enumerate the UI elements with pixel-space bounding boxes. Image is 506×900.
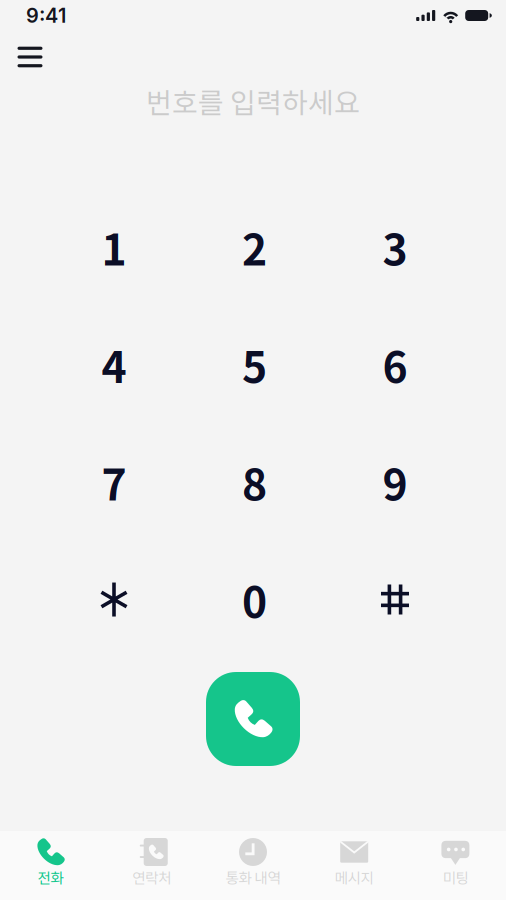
button[interactable]: 0 <box>184 554 325 644</box>
staticText: 7 <box>101 451 126 513</box>
button[interactable]: 6 <box>325 319 465 409</box>
staticText: 0 <box>242 569 267 630</box>
staticText: 3 <box>382 216 407 278</box>
button[interactable]: 1 <box>44 202 184 292</box>
button[interactable]: 2 <box>184 202 325 292</box>
staticText: 메시지 <box>335 866 374 888</box>
button[interactable]: Star <box>44 554 184 644</box>
staticText: 2 <box>242 216 267 278</box>
button[interactable]: 연락처 <box>101 824 202 900</box>
button[interactable]: Menu <box>5 39 55 75</box>
staticText: 미팅 <box>442 866 468 888</box>
staticText: 6 <box>382 334 407 395</box>
staticText: 8 <box>242 451 267 513</box>
button[interactable]: 5 <box>184 319 325 409</box>
staticText: 연락처 <box>132 866 171 888</box>
staticText: 9 <box>382 451 407 513</box>
button[interactable]: 8 <box>184 437 325 527</box>
staticText: 1 <box>101 216 126 278</box>
button[interactable]: 전화 <box>0 824 101 900</box>
button[interactable]: Pound <box>325 554 465 644</box>
button[interactable]: 미팅 <box>405 824 506 900</box>
button[interactable]: 3 <box>325 202 465 292</box>
button[interactable]: 7 <box>44 437 184 527</box>
button[interactable]: Call <box>206 672 300 766</box>
staticText: 번호를 입력하세요 <box>146 81 360 121</box>
staticText: 전화 <box>38 866 64 888</box>
button[interactable]: 메시지 <box>304 824 405 900</box>
staticText: 9:41 <box>26 3 66 28</box>
button[interactable]: 4 <box>44 319 184 409</box>
staticText: 통화 내역 <box>225 866 280 888</box>
staticText: 5 <box>242 334 267 395</box>
button[interactable]: 통화 내역 <box>202 824 304 900</box>
button[interactable]: 9 <box>325 437 465 527</box>
staticText: 4 <box>101 334 126 395</box>
